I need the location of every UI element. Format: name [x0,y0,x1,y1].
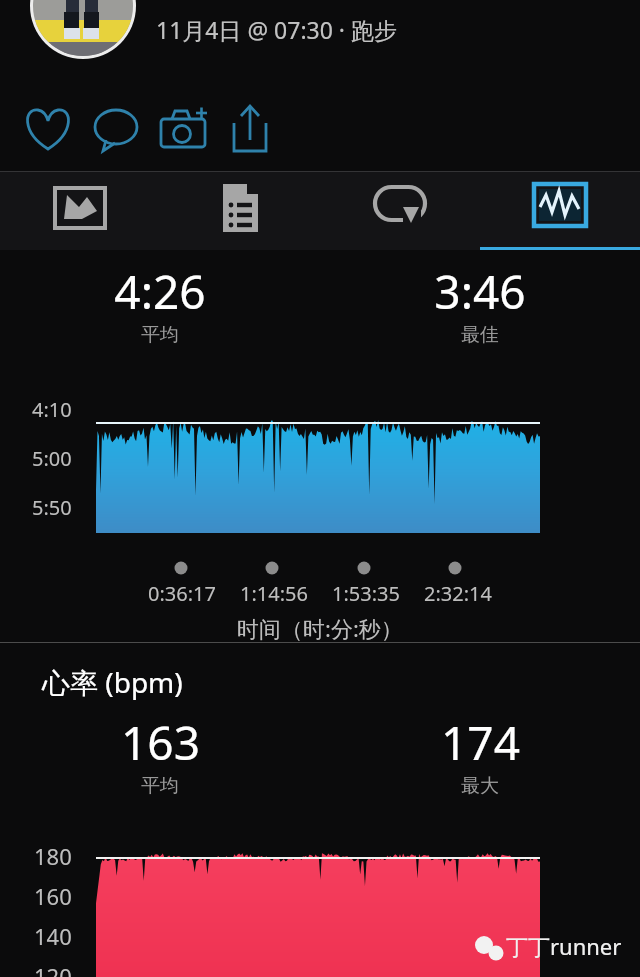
staticText: 2:32:14 [412,580,504,607]
button[interactable]: Like [21,100,88,160]
staticText: 1:14:56 [228,580,320,607]
staticText: 174 [441,711,520,774]
staticText: 5:50 [32,494,72,521]
button[interactable]: Add photo [155,100,222,160]
staticText: 4:10 [32,396,72,423]
staticText: 丁丁runner [506,931,622,961]
button[interactable]: Map [0,172,160,250]
staticText: 1:53:35 [320,580,412,607]
staticText: 平均 [141,774,179,798]
staticText: 最大 [461,774,499,798]
staticText: 5:00 [32,445,72,472]
staticText: 4:26 [114,260,206,323]
staticText: 180 [34,841,72,871]
staticText: 160 [34,881,72,911]
button[interactable]: Laps [320,172,480,250]
staticText: 平均 [141,323,179,347]
button[interactable]: Comment [88,100,155,160]
staticText: 163 [121,711,200,774]
staticText: 140 [34,921,72,951]
button[interactable]: Charts [480,172,640,250]
staticText: 120 [34,961,72,977]
button[interactable]: Splits [160,172,320,250]
staticText: 0:36:17 [136,580,228,607]
staticText: 11月4日 @ 07:30 · 跑步 [156,14,398,45]
staticText: 时间（时:分:秒） [237,613,403,642]
staticText: 最佳 [461,323,499,347]
button[interactable]: Share [222,100,289,160]
staticText: 3:46 [434,260,526,323]
staticText: 心率 (bpm) [42,663,183,701]
